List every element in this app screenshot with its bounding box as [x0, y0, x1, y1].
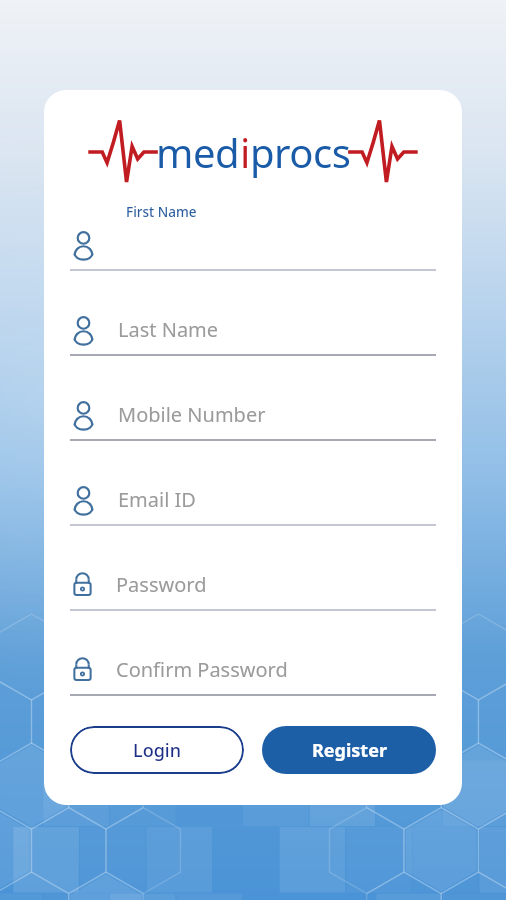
staticText: Email ID — [118, 486, 196, 513]
button[interactable]: Name field — [70, 367, 436, 441]
other: Name field — [70, 315, 97, 344]
staticText: med — [156, 125, 240, 179]
staticText: Login — [133, 738, 181, 763]
staticText: First Name — [126, 203, 197, 221]
button[interactable]: Password field — [70, 622, 436, 696]
staticText: procs — [250, 125, 351, 179]
other: Name field — [70, 400, 97, 429]
staticText: Register — [312, 738, 387, 763]
button[interactable]: Password field — [70, 537, 436, 611]
button[interactable]: Register — [262, 726, 436, 774]
staticText: Password — [116, 571, 207, 598]
button[interactable]: Name field — [70, 282, 436, 356]
button[interactable]: Name field — [70, 452, 436, 526]
button[interactable]: First Name — [70, 197, 436, 271]
staticText: Last Name — [118, 316, 219, 343]
other: Password field — [70, 569, 95, 599]
other: Name field — [70, 230, 97, 259]
button[interactable]: Login — [70, 726, 244, 774]
other: Name field — [70, 485, 97, 514]
staticText: i — [240, 125, 250, 179]
staticText: Confirm Password — [116, 656, 288, 683]
other: Password field — [70, 654, 95, 684]
staticText: Mobile Number — [118, 401, 266, 428]
